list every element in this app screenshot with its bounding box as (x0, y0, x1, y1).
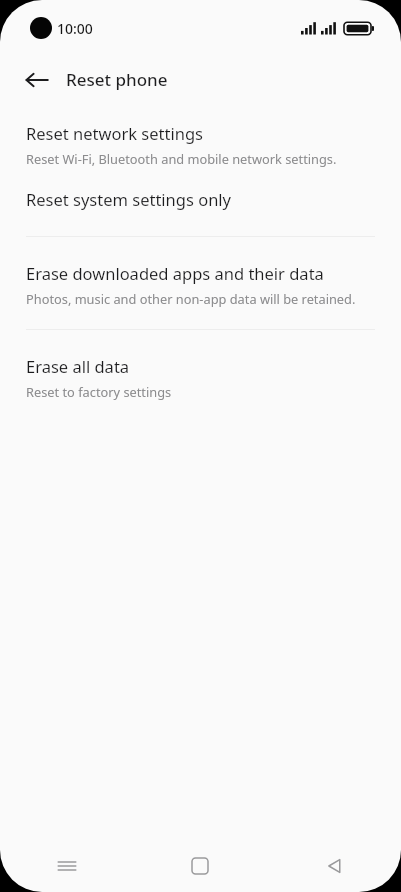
button[interactable]: Erase all data (0, 355, 401, 400)
button[interactable]: Erase downloaded apps and their data (0, 262, 401, 307)
staticText: Photos, music and other non-app data wil… (26, 290, 356, 307)
staticText: Erase downloaded apps and their data (26, 262, 324, 284)
staticText: Reset phone (66, 68, 168, 91)
button[interactable]: Reset system settings only (0, 188, 401, 210)
staticText: Erase all data (26, 355, 130, 377)
staticText: Reset Wi-Fi, Bluetooth and mobile networ… (26, 150, 337, 167)
button[interactable]: Reset network settings (0, 122, 401, 167)
button[interactable]: Back (267, 840, 401, 892)
staticText: 10:00 (57, 19, 93, 38)
button[interactable]: Recent apps (0, 840, 133, 892)
staticText: Reset system settings only (26, 188, 231, 210)
button[interactable]: Back (14, 57, 60, 103)
staticText: Reset to factory settings (26, 383, 172, 400)
staticText: Reset network settings (26, 122, 203, 144)
button[interactable]: Home (133, 840, 267, 892)
